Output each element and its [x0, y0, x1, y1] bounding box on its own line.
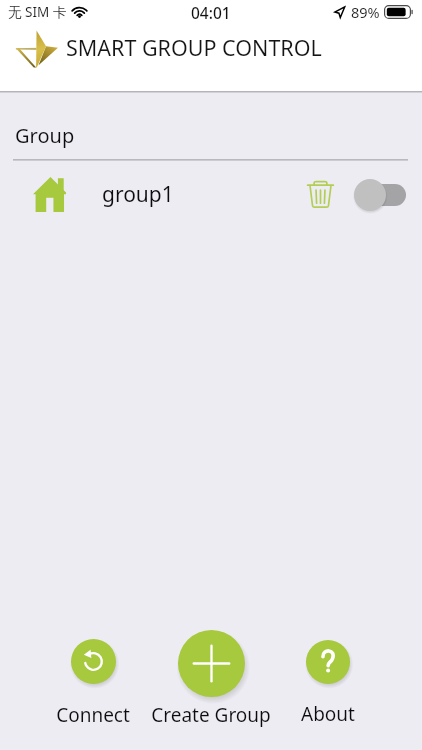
button[interactable]: Delete group: [298, 172, 342, 216]
button[interactable]: Connect: [18, 639, 168, 728]
staticText: About: [301, 701, 355, 727]
button[interactable]: Toggle group: [350, 177, 408, 212]
staticText: 04:01: [191, 2, 231, 23]
staticText: 89%: [351, 2, 380, 22]
staticText: group1: [102, 180, 174, 209]
staticText: Create Group: [151, 702, 271, 728]
staticText: Connect: [56, 702, 130, 728]
staticText: SMART GROUP CONTROL: [66, 33, 322, 62]
staticText: 无 SIM 卡: [8, 3, 67, 21]
button[interactable]: group1: [0, 166, 422, 223]
staticText: Group: [15, 122, 75, 149]
button[interactable]: About: [253, 640, 403, 727]
button[interactable]: Create Group: [136, 630, 286, 728]
